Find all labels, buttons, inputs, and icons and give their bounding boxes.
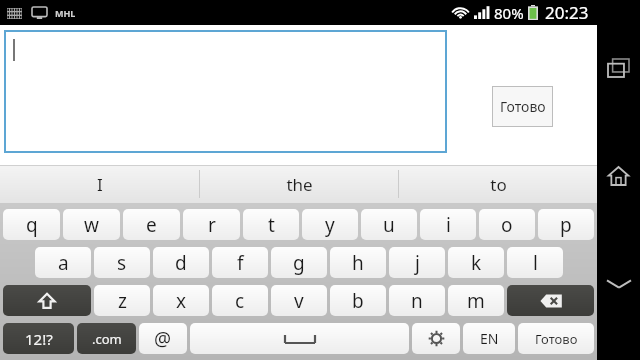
button[interactable]: Back bbox=[597, 258, 640, 310]
staticText: g bbox=[293, 250, 305, 276]
staticText: q bbox=[26, 212, 38, 238]
staticText: 80% bbox=[494, 3, 524, 23]
staticText: m bbox=[467, 288, 485, 314]
button[interactable] bbox=[6, 32, 445, 151]
button[interactable]: n bbox=[389, 285, 445, 316]
button[interactable]: @ bbox=[139, 323, 187, 354]
staticText: r bbox=[208, 212, 216, 238]
staticText: y bbox=[325, 212, 335, 238]
staticText: 20:23 bbox=[545, 1, 589, 24]
button[interactable]: k bbox=[448, 247, 504, 278]
button[interactable]: w bbox=[63, 209, 120, 240]
button[interactable]: i bbox=[420, 209, 476, 240]
staticText: @ bbox=[154, 326, 172, 352]
staticText: o bbox=[501, 212, 513, 238]
button[interactable]: p bbox=[538, 209, 594, 240]
button[interactable]: l bbox=[507, 247, 563, 278]
button[interactable]: Recents bbox=[597, 42, 640, 94]
button[interactable]: f bbox=[212, 247, 268, 278]
button[interactable]: Готово bbox=[493, 87, 552, 126]
staticText: to bbox=[490, 173, 507, 196]
staticText: Готово bbox=[500, 97, 546, 116]
button[interactable]: I bbox=[0, 165, 199, 203]
staticText: x bbox=[176, 288, 187, 314]
staticText: t bbox=[268, 212, 275, 238]
button[interactable]: Space bbox=[190, 323, 409, 354]
staticText: f bbox=[237, 250, 244, 276]
staticText: i bbox=[446, 212, 451, 238]
staticText: j bbox=[415, 250, 420, 276]
button[interactable]: t bbox=[243, 209, 299, 240]
staticText: c bbox=[235, 288, 245, 314]
button[interactable]: q bbox=[3, 209, 60, 240]
staticText: b bbox=[352, 288, 364, 314]
button[interactable]: u bbox=[361, 209, 417, 240]
staticText: k bbox=[471, 250, 482, 276]
button[interactable]: m bbox=[448, 285, 504, 316]
staticText: v bbox=[294, 288, 304, 314]
button[interactable]: the bbox=[200, 165, 398, 203]
staticText: I bbox=[97, 173, 103, 196]
staticText: w bbox=[84, 212, 99, 238]
button[interactable]: j bbox=[389, 247, 445, 278]
button[interactable]: o bbox=[479, 209, 535, 240]
button[interactable]: d bbox=[153, 247, 209, 278]
button[interactable]: c bbox=[212, 285, 268, 316]
staticText: p bbox=[560, 212, 572, 238]
button[interactable]: s bbox=[94, 247, 150, 278]
staticText: u bbox=[383, 212, 395, 238]
button[interactable]: Готово bbox=[518, 323, 594, 354]
button[interactable]: g bbox=[271, 247, 327, 278]
staticText: 12!? bbox=[25, 329, 53, 349]
staticText: .com bbox=[92, 330, 122, 348]
button[interactable]: Settings bbox=[412, 323, 460, 354]
staticText: n bbox=[411, 288, 423, 314]
button[interactable]: y bbox=[302, 209, 358, 240]
staticText: e bbox=[146, 212, 157, 238]
staticText: MHL bbox=[55, 7, 76, 19]
button[interactable]: x bbox=[153, 285, 209, 316]
button[interactable]: Backspace bbox=[507, 285, 594, 316]
staticText: d bbox=[175, 250, 187, 276]
button[interactable]: Shift bbox=[3, 285, 91, 316]
staticText: Готово bbox=[535, 330, 578, 348]
button[interactable]: z bbox=[94, 285, 150, 316]
staticText: h bbox=[352, 250, 364, 276]
button[interactable]: v bbox=[271, 285, 327, 316]
button[interactable]: r bbox=[183, 209, 240, 240]
button[interactable]: b bbox=[330, 285, 386, 316]
button[interactable]: .com bbox=[77, 323, 136, 354]
staticText: z bbox=[118, 288, 127, 314]
staticText: EN bbox=[480, 329, 499, 348]
button[interactable]: e bbox=[123, 209, 180, 240]
button[interactable]: EN bbox=[463, 323, 515, 354]
button[interactable]: h bbox=[330, 247, 386, 278]
button[interactable]: Home bbox=[597, 150, 640, 202]
staticText: a bbox=[58, 250, 69, 276]
staticText: the bbox=[286, 173, 313, 196]
button[interactable]: to bbox=[399, 165, 597, 203]
staticText: l bbox=[533, 250, 538, 276]
button[interactable]: 12!? bbox=[3, 323, 74, 354]
staticText: s bbox=[117, 250, 127, 276]
button[interactable]: a bbox=[35, 247, 91, 278]
